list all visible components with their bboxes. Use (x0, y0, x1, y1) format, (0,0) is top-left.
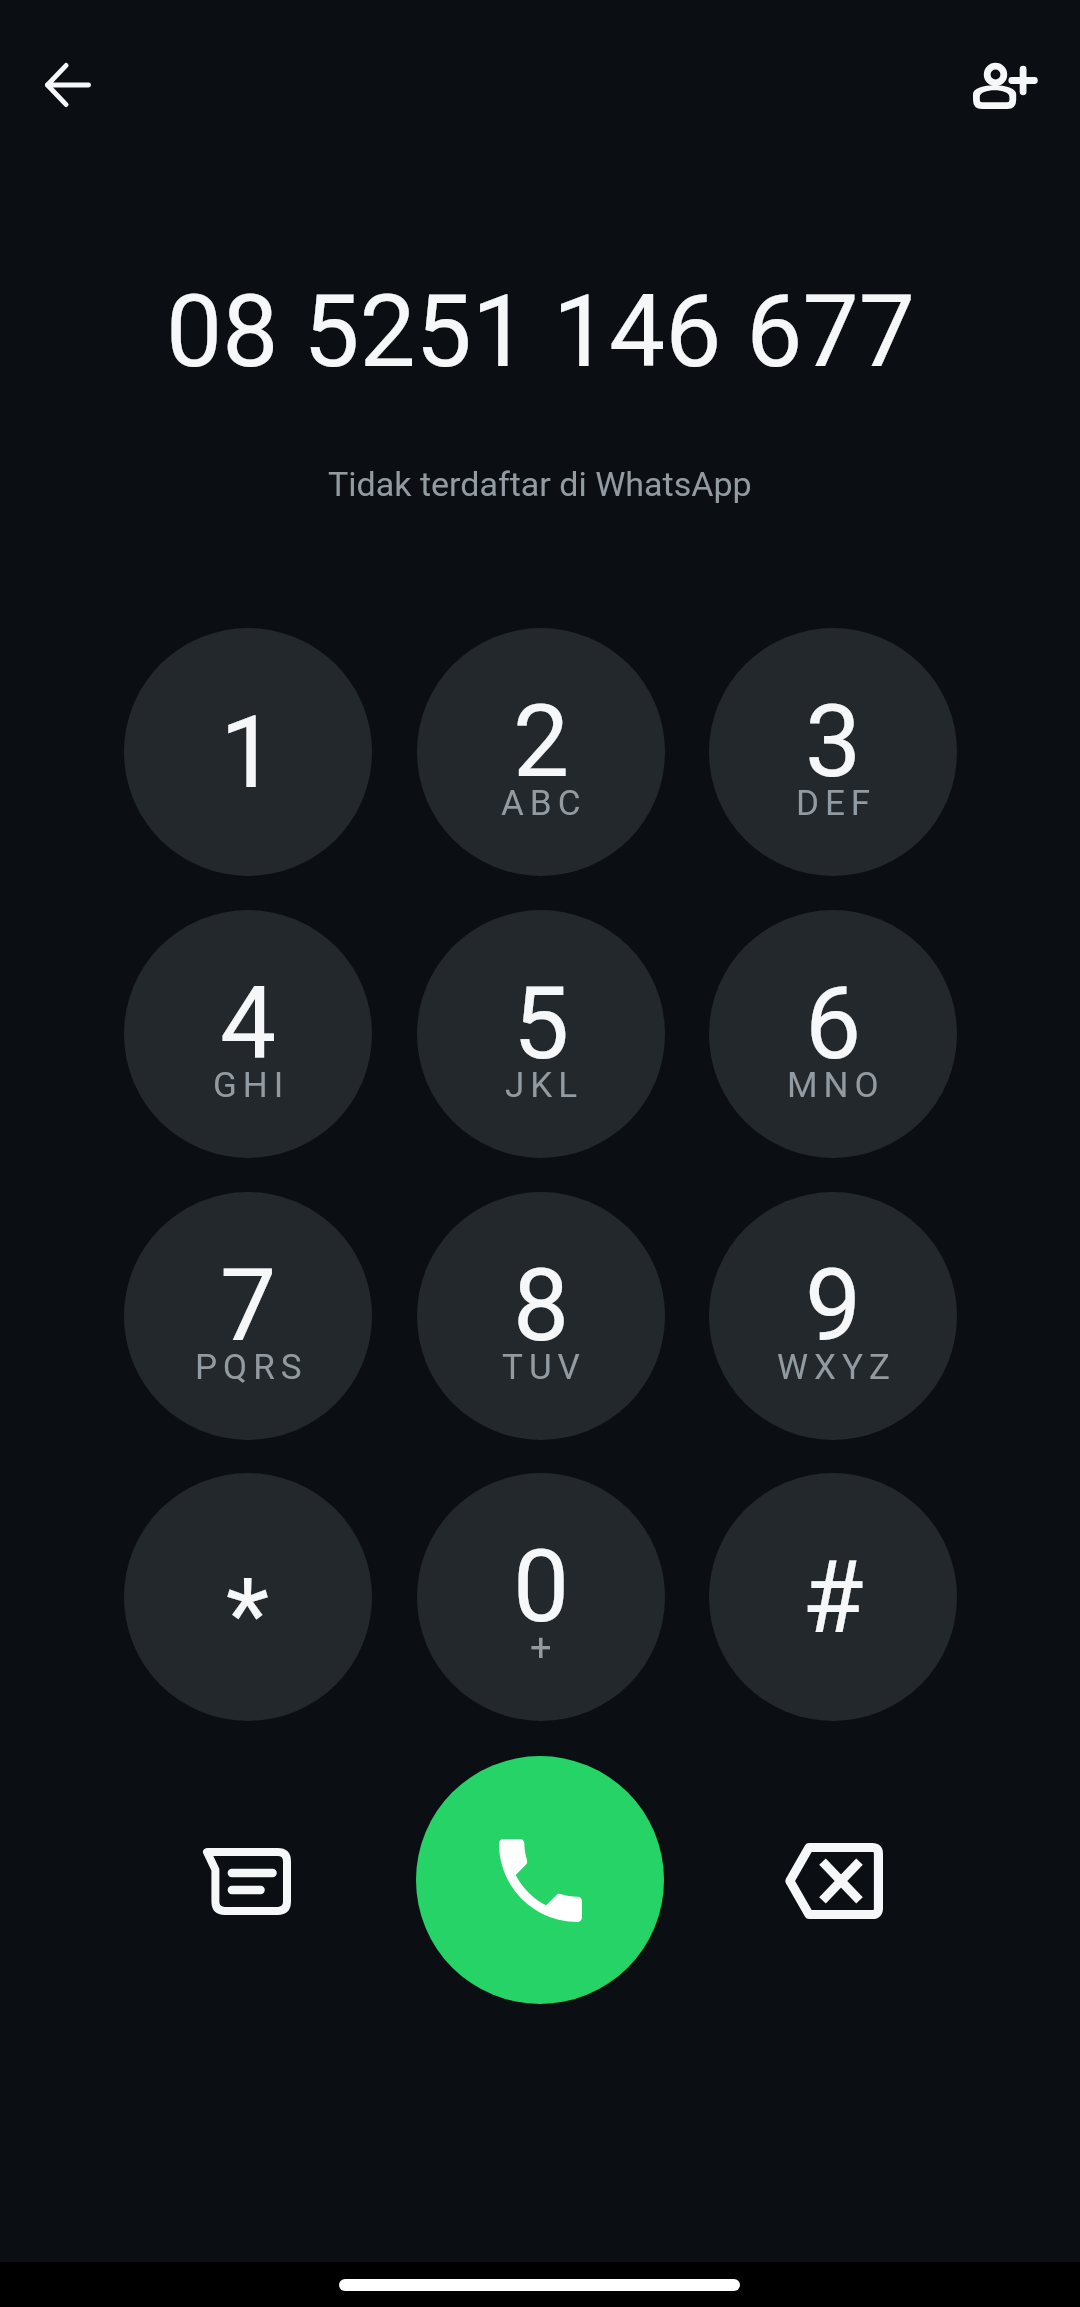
button[interactable]: 3 (709, 628, 957, 876)
staticText: 6 (805, 965, 862, 1082)
button[interactable]: 4 (124, 910, 372, 1158)
staticText: 8 (513, 1247, 570, 1364)
staticText: GHI (213, 1065, 290, 1106)
button[interactable]: 5 (417, 910, 665, 1158)
staticText: TUV (502, 1347, 586, 1388)
staticText: + (530, 1626, 552, 1671)
staticText: 08 5251 146 677 (166, 273, 915, 390)
button[interactable]: # (709, 1473, 957, 1721)
staticText: 0 (513, 1528, 570, 1645)
staticText: 5 (513, 965, 570, 1082)
staticText: Tidak terdaftar di WhatsApp (328, 464, 752, 504)
staticText: ABC (501, 783, 587, 824)
button[interactable]: 8 (417, 1192, 665, 1440)
staticText: WXYZ (777, 1347, 896, 1388)
button[interactable]: Send message (172, 1806, 322, 1956)
staticText: PQRS (195, 1347, 308, 1388)
staticText: 3 (805, 683, 862, 800)
button[interactable]: 6 (709, 910, 957, 1158)
staticText: DEF (796, 783, 877, 824)
button[interactable]: Call (416, 1756, 664, 2004)
staticText: # (802, 1539, 864, 1656)
staticText: 2 (513, 683, 570, 800)
button[interactable]: Backspace (758, 1806, 908, 1956)
button[interactable]: Add contact (948, 31, 1058, 141)
staticText: 1 (220, 694, 277, 811)
button[interactable]: Back (13, 30, 123, 140)
button[interactable]: * (124, 1473, 372, 1721)
button[interactable]: 9 (709, 1192, 957, 1440)
button[interactable]: 1 (124, 628, 372, 876)
staticText: 4 (220, 965, 277, 1082)
staticText: MNO (787, 1065, 885, 1106)
button[interactable]: 7 (124, 1192, 372, 1440)
staticText: 7 (220, 1247, 277, 1364)
button[interactable]: 0 (417, 1473, 665, 1721)
staticText: JKL (505, 1065, 584, 1106)
button[interactable]: 2 (417, 628, 665, 876)
staticText: 9 (805, 1247, 862, 1364)
staticText: * (226, 1556, 270, 1673)
